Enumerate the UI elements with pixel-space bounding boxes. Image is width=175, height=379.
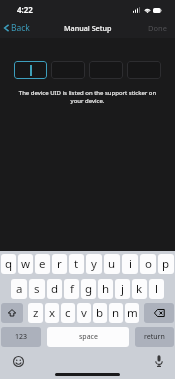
- staticText: r: [57, 256, 62, 272]
- staticText: n: [112, 305, 120, 321]
- button[interactable]: v: [77, 303, 91, 323]
- button[interactable]: n: [109, 303, 123, 323]
- button[interactable]: r: [52, 254, 67, 274]
- button[interactable]: Backspace: [144, 303, 174, 323]
- staticText: v: [81, 305, 87, 321]
- button[interactable]: [89, 61, 123, 79]
- staticText: l: [155, 281, 158, 297]
- button[interactable]: f: [64, 279, 79, 299]
- staticText: j: [121, 281, 124, 297]
- staticText: z: [33, 305, 39, 321]
- staticText: d: [51, 281, 59, 297]
- button[interactable]: Done: [140, 19, 175, 37]
- staticText: t: [74, 256, 79, 272]
- button[interactable]: h: [98, 279, 113, 299]
- button[interactable]: Emoji keyboard: [8, 351, 29, 372]
- staticText: The device UID is listed on the support …: [14, 89, 161, 104]
- button[interactable]: p: [158, 254, 174, 274]
- button[interactable]: q: [1, 254, 16, 274]
- button[interactable]: 123: [1, 327, 41, 347]
- button[interactable]: return: [135, 327, 174, 347]
- staticText: u: [108, 256, 116, 272]
- button[interactable]: [51, 61, 85, 79]
- staticText: o: [145, 256, 152, 272]
- staticText: e: [39, 256, 46, 272]
- staticText: w: [21, 256, 31, 272]
- staticText: m: [127, 305, 138, 321]
- button[interactable]: y: [86, 254, 102, 274]
- staticText: y: [91, 256, 97, 272]
- staticText: k: [136, 281, 143, 297]
- button[interactable]: e: [35, 254, 50, 274]
- staticText: 4:22: [17, 4, 33, 15]
- button[interactable]: l: [149, 279, 164, 299]
- button[interactable]: i: [122, 254, 138, 274]
- staticText: h: [102, 281, 110, 297]
- button[interactable]: o: [140, 254, 156, 274]
- staticText: c: [65, 305, 71, 321]
- staticText: s: [34, 281, 40, 297]
- button[interactable]: k: [132, 279, 147, 299]
- staticText: i: [129, 256, 132, 272]
- button[interactable]: m: [125, 303, 139, 323]
- staticText: b: [96, 305, 104, 321]
- staticText: 123: [15, 332, 28, 342]
- button[interactable]: Back: [0, 18, 36, 38]
- button[interactable]: x: [45, 303, 59, 323]
- staticText: Back: [11, 22, 30, 34]
- staticText: a: [16, 281, 23, 297]
- staticText: q: [5, 256, 13, 272]
- button[interactable]: Shift: [1, 303, 23, 323]
- button[interactable]: b: [93, 303, 107, 323]
- button[interactable]: z: [28, 303, 43, 323]
- button[interactable]: space: [47, 327, 129, 347]
- button[interactable]: t: [69, 254, 84, 274]
- button[interactable]: [14, 61, 47, 79]
- staticText: f: [70, 281, 74, 297]
- button[interactable]: u: [104, 254, 120, 274]
- button[interactable]: Dictation: [148, 350, 169, 371]
- button[interactable]: j: [115, 279, 130, 299]
- staticText: p: [162, 256, 170, 272]
- button[interactable]: s: [29, 279, 45, 299]
- button[interactable]: d: [47, 279, 62, 299]
- staticText: return: [144, 332, 165, 342]
- staticText: g: [85, 281, 93, 297]
- button[interactable]: w: [18, 254, 33, 274]
- button[interactable]: c: [61, 303, 75, 323]
- button[interactable]: g: [81, 279, 96, 299]
- button[interactable]: [127, 61, 161, 79]
- staticText: Manual Setup: [64, 23, 112, 33]
- button[interactable]: a: [11, 279, 27, 299]
- staticText: x: [49, 305, 56, 321]
- staticText: space: [79, 332, 98, 342]
